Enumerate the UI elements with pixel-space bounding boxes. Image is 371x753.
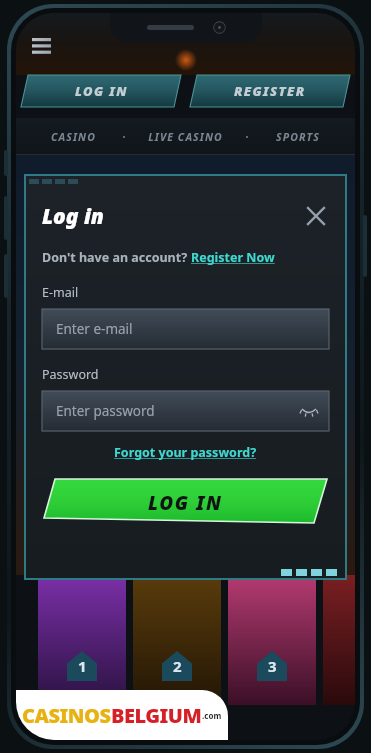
staticText: LOG IN (148, 490, 223, 516)
button[interactable]: Show password (298, 400, 320, 422)
button[interactable] (323, 575, 355, 705)
button[interactable]: Enter e-mail (42, 309, 329, 349)
staticText: CASINO (51, 130, 96, 144)
button[interactable]: REGISTER (190, 75, 350, 107)
staticText: SPORTS (276, 130, 320, 144)
button[interactable]: 1 (38, 575, 126, 705)
staticText: 2 (173, 656, 182, 676)
staticText: Forgot your password? (114, 444, 257, 461)
button[interactable]: LIVE CASINO (129, 130, 242, 144)
button[interactable]: Register Now (191, 249, 275, 266)
button[interactable]: SPORTS (252, 130, 343, 144)
button[interactable]: CASINO (28, 130, 119, 144)
staticText: 1 (78, 656, 87, 676)
button[interactable]: Forgot your password? (114, 444, 257, 461)
staticText: BELGIUM (111, 702, 202, 729)
staticText: Log in (42, 202, 104, 231)
staticText: E-mail (42, 284, 79, 301)
staticText: LIVE CASINO (148, 130, 223, 144)
staticText: .com (202, 710, 222, 721)
staticText: Password (42, 366, 99, 383)
staticText: REGISTER (234, 82, 306, 100)
staticText: LOG IN (75, 82, 128, 100)
button[interactable]: 2 (133, 575, 221, 705)
staticText: Don't have an account? (42, 249, 191, 266)
button[interactable]: Enter password (42, 391, 329, 431)
button[interactable]: Menu (28, 31, 58, 61)
staticText: Enter e-mail (56, 320, 133, 338)
button[interactable]: LOG IN (21, 75, 181, 107)
staticText: Enter password (56, 402, 155, 420)
staticText: Register Now (191, 249, 275, 266)
staticText: 3 (268, 656, 277, 676)
button[interactable]: LOG IN (42, 477, 329, 529)
staticText: CASINOS (22, 702, 111, 729)
button[interactable]: Close (303, 203, 329, 229)
button[interactable]: 3 (228, 575, 316, 705)
